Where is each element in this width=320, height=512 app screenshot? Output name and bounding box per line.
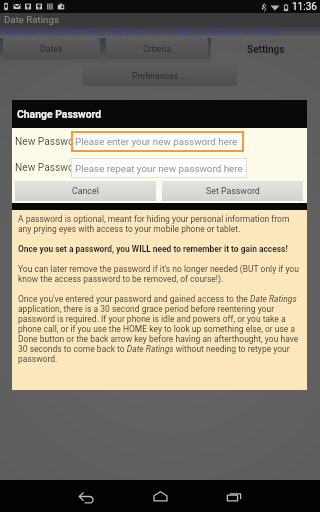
staticText: Set Password bbox=[206, 186, 260, 196]
staticText: Criteria bbox=[143, 44, 171, 54]
button[interactable]: Home bbox=[137, 480, 183, 512]
staticText: Once you set a password, you WILL need t… bbox=[18, 244, 288, 254]
staticText: A password is optional, meant for hiding… bbox=[18, 214, 301, 234]
button[interactable]: Preferences ... bbox=[82, 65, 237, 86]
staticText: Please repeat your new password here bbox=[75, 163, 243, 174]
button[interactable]: Back bbox=[63, 480, 109, 512]
staticText: Please enter your new password here bbox=[75, 136, 238, 147]
staticText: Settings bbox=[247, 44, 285, 56]
staticText: Change Password bbox=[17, 108, 102, 120]
staticText: Dates bbox=[40, 44, 63, 54]
staticText: New Password: bbox=[15, 162, 86, 174]
button[interactable]: Settings bbox=[211, 38, 320, 63]
staticText: Cancel bbox=[72, 186, 99, 196]
button[interactable]: Cancel bbox=[15, 181, 156, 201]
staticText: Customize to you preferences, change fon… bbox=[0, 27, 283, 36]
staticText: You can later remove the password if it'… bbox=[18, 264, 301, 284]
button[interactable]: Set Password bbox=[162, 181, 303, 201]
staticText: New Password: bbox=[15, 136, 86, 148]
button[interactable]: Please repeat your new password here bbox=[71, 158, 247, 178]
staticText: Preferences ... bbox=[132, 71, 188, 81]
staticText: 11:36 bbox=[292, 1, 317, 13]
staticText: Date Ratings bbox=[4, 14, 59, 25]
button[interactable]: Criteria bbox=[106, 38, 208, 59]
button[interactable]: Please enter your new password here bbox=[71, 131, 244, 152]
button[interactable]: Recent apps bbox=[211, 480, 257, 512]
button[interactable]: Dates bbox=[3, 38, 100, 59]
staticText: Once you've entered your password and ga… bbox=[18, 294, 301, 364]
